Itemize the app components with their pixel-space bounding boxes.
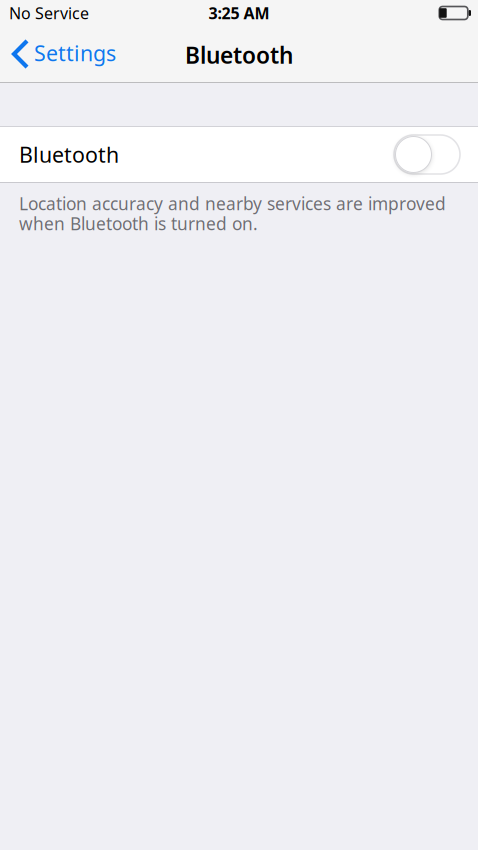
staticText: Bluetooth [19, 140, 119, 169]
button[interactable]: Bluetooth, off [394, 135, 460, 174]
staticText: 3:25 AM [208, 2, 269, 24]
button[interactable]: Settings [0, 24, 125, 82]
staticText: Settings [34, 39, 116, 67]
staticText: Location accuracy and nearby services ar… [19, 192, 446, 215]
staticText: Bluetooth [185, 40, 293, 70]
staticText: when Bluetooth is turned on. [19, 212, 258, 235]
staticText: No Service [9, 2, 89, 24]
button[interactable]: Bluetooth [0, 127, 478, 182]
